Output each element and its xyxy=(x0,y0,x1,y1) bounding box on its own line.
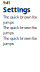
staticText: The quick brown fox jumps xyxy=(3,35,37,46)
staticText: The quick brown fox jumps xyxy=(3,25,37,35)
staticText: The quick brown fox jumps xyxy=(3,14,37,25)
staticText: Settings xyxy=(3,5,30,14)
staticText: 9:41 xyxy=(3,0,10,5)
